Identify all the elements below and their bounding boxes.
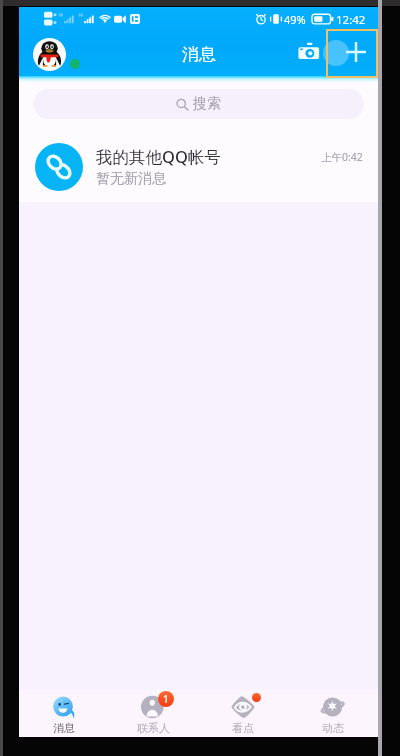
button[interactable]: Camera: [294, 37, 324, 67]
staticText: 联系人: [137, 721, 170, 735]
staticText: 12:42: [336, 12, 366, 28]
button[interactable]: 消息: [19, 690, 108, 737]
button[interactable]: 动态: [288, 690, 378, 737]
button[interactable]: Profile: [33, 38, 66, 71]
staticText: 1: [163, 692, 169, 706]
button[interactable]: 我的其他QQ帐号: [19, 122, 378, 201]
staticText: 搜索: [193, 95, 221, 113]
staticText: 看点: [232, 721, 254, 735]
button[interactable]: 搜索: [33, 89, 364, 119]
staticText: 消息: [53, 721, 75, 735]
staticText: 49%: [284, 12, 306, 27]
staticText: 消息: [182, 44, 216, 65]
staticText: 动态: [322, 721, 344, 735]
button[interactable]: 看点: [198, 690, 288, 737]
staticText: 上午0:42: [321, 150, 363, 164]
staticText: 暂无新消息: [96, 170, 166, 188]
button[interactable]: Add: [326, 29, 378, 78]
button[interactable]: 1: [108, 690, 198, 737]
staticText: 我的其他QQ帐号: [96, 145, 221, 168]
